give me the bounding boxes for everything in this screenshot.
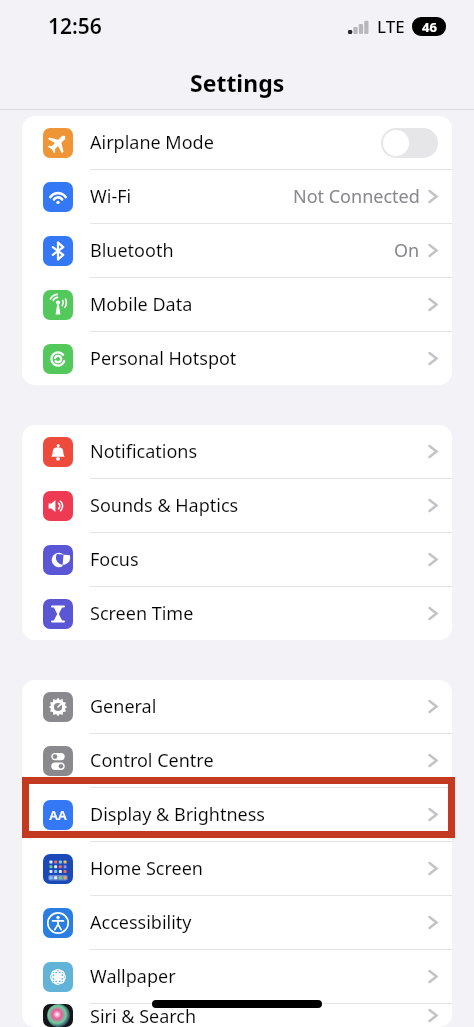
button[interactable]: Wi-Fi bbox=[22, 170, 452, 223]
button[interactable]: Airplane Mode bbox=[22, 116, 452, 169]
staticText: Personal Hotspot bbox=[90, 346, 237, 371]
staticText: Not Connected bbox=[293, 184, 420, 209]
button[interactable]: Screen Time bbox=[22, 587, 452, 640]
staticText: Home Screen bbox=[90, 856, 203, 881]
staticText: 46 bbox=[422, 18, 437, 36]
button[interactable]: General bbox=[22, 680, 452, 733]
staticText: Accessibility bbox=[90, 910, 192, 935]
button[interactable]: Focus bbox=[22, 533, 452, 586]
staticText: Control Centre bbox=[90, 748, 214, 773]
staticText: Sounds & Haptics bbox=[90, 493, 239, 518]
button[interactable]: Accessibility bbox=[22, 896, 452, 949]
staticText: Notifications bbox=[90, 439, 198, 464]
staticText: Airplane Mode bbox=[90, 130, 214, 155]
button[interactable]: Sounds & Haptics bbox=[22, 479, 452, 532]
staticText: Wi-Fi bbox=[90, 184, 132, 209]
button[interactable]: Notifications bbox=[22, 425, 452, 478]
staticText: Siri & Search bbox=[90, 1004, 197, 1027]
button[interactable]: Home Screen bbox=[22, 842, 452, 895]
button[interactable]: Bluetooth bbox=[22, 224, 452, 277]
staticText: Screen Time bbox=[90, 601, 194, 626]
staticText: Wallpaper bbox=[90, 964, 176, 989]
staticText: Focus bbox=[90, 547, 139, 572]
staticText: LTE bbox=[377, 15, 405, 38]
staticText: General bbox=[90, 694, 157, 719]
staticText: Mobile Data bbox=[90, 292, 193, 317]
staticText: 12:56 bbox=[48, 12, 102, 41]
button[interactable]: Control Centre bbox=[22, 734, 452, 787]
staticText: Bluetooth bbox=[90, 238, 174, 263]
staticText: On bbox=[394, 238, 420, 263]
button[interactable]: AA bbox=[22, 788, 452, 841]
staticText: AA bbox=[49, 806, 67, 824]
button[interactable]: Personal Hotspot bbox=[22, 332, 452, 385]
staticText: Settings bbox=[190, 67, 285, 98]
button[interactable]: Airplane Mode toggle, off bbox=[381, 128, 438, 158]
button[interactable]: Siri & Search bbox=[22, 1004, 452, 1027]
button[interactable]: Wallpaper bbox=[22, 950, 452, 1003]
button[interactable]: Mobile Data bbox=[22, 278, 452, 331]
staticText: Display & Brightness bbox=[90, 802, 265, 827]
